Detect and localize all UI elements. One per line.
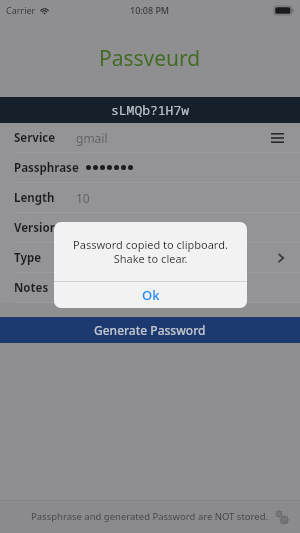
button[interactable]: Type — [0, 243, 300, 272]
staticText: Type — [14, 250, 42, 266]
staticText: Passphrase — [14, 160, 79, 176]
staticText: Passveurd — [99, 44, 201, 73]
button[interactable]: Saved services — [266, 127, 288, 149]
button[interactable]: Notes — [0, 273, 300, 302]
button[interactable]: Version — [0, 213, 300, 242]
staticText: Password copied to clipboard. Shake to c… — [70, 237, 231, 266]
button[interactable]: Service — [0, 123, 300, 152]
staticText: gmail — [76, 130, 108, 146]
button[interactable]: Settings — [270, 505, 294, 529]
button[interactable]: Passphrase — [0, 153, 300, 182]
staticText: 10 — [76, 190, 90, 206]
button[interactable]: Generate Password — [0, 317, 300, 343]
button[interactable]: Ok — [54, 282, 247, 308]
staticText: Carrier — [6, 4, 36, 16]
staticText: 10:08 PM — [130, 4, 170, 16]
staticText: Passphrase and generated Password are NO… — [31, 510, 269, 523]
staticText: Length — [14, 190, 55, 206]
staticText: Version — [14, 220, 58, 236]
button[interactable]: sLMQb?1H7w — [0, 97, 300, 123]
staticText: Ok — [142, 286, 160, 304]
button[interactable]: Length — [0, 183, 300, 212]
staticText: sLMQb?1H7w — [111, 101, 190, 119]
staticText: Service — [14, 130, 56, 146]
staticText: Notes — [14, 280, 49, 296]
staticText: Generate Password — [94, 322, 206, 338]
